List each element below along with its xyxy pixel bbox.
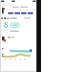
button[interactable] <box>8 12 33 15</box>
button[interactable] <box>10 23 20 28</box>
